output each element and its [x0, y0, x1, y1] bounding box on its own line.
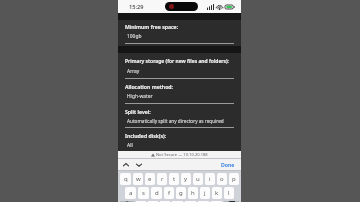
staticText: h — [191, 189, 195, 197]
staticText: o — [220, 175, 224, 183]
button[interactable]: t — [169, 173, 179, 185]
staticText: y — [184, 175, 188, 183]
button[interactable]: Allocation method: — [118, 83, 241, 104]
button[interactable]: Next field — [135, 161, 143, 169]
staticText: w — [136, 175, 141, 183]
staticText: q — [124, 175, 128, 183]
button[interactable]: k — [212, 187, 222, 199]
staticText: d — [155, 189, 159, 197]
staticText: Array — [127, 68, 140, 75]
staticText: r — [161, 175, 164, 183]
staticText: Included disk(s): — [125, 132, 167, 139]
staticText: e — [148, 175, 152, 183]
button[interactable]: Done — [215, 159, 241, 170]
button[interactable]: p — [229, 173, 239, 185]
staticText: p — [232, 175, 236, 183]
button[interactable]: Primary storage (for new files and folde… — [118, 58, 241, 79]
button[interactable]: Included disk(s): — [118, 132, 241, 151]
staticText: Allocation method: — [125, 83, 174, 90]
button[interactable]: Shift — [120, 201, 134, 202]
button[interactable]: w — [133, 173, 143, 185]
staticText: j — [204, 189, 206, 197]
button[interactable]: o — [217, 173, 227, 185]
staticText: l — [228, 189, 230, 197]
button[interactable]: j — [200, 187, 210, 199]
staticText: g — [179, 189, 183, 197]
staticText: Done — [221, 161, 235, 168]
button[interactable]: Split level: — [118, 108, 241, 128]
staticText: Minimum free space: — [125, 23, 179, 30]
button[interactable]: q — [120, 173, 131, 185]
button[interactable]: a — [125, 187, 136, 199]
staticText: t — [173, 175, 176, 183]
staticText: Primary storage (for new files and folde… — [125, 58, 229, 65]
staticText: i — [209, 175, 211, 183]
button[interactable]: u — [193, 173, 203, 185]
staticText: u — [196, 175, 200, 183]
button[interactable]: Previous field — [122, 161, 130, 169]
staticText: Automatically split any directory as req… — [127, 118, 224, 124]
button[interactable]: e — [145, 173, 155, 185]
staticText: High-water — [127, 93, 153, 100]
button[interactable]: g — [176, 187, 186, 199]
button[interactable]: h — [188, 187, 198, 199]
button[interactable]: i — [205, 173, 215, 185]
button[interactable]: d — [151, 187, 162, 199]
staticText: 100gb — [127, 33, 142, 40]
button[interactable]: f — [164, 187, 174, 199]
staticText: f — [168, 189, 171, 197]
staticText: s — [142, 189, 145, 197]
button[interactable]: Delete — [224, 201, 239, 202]
staticText: All — [127, 142, 133, 149]
button[interactable]: r — [157, 173, 167, 185]
button[interactable]: s — [138, 187, 149, 199]
staticText: Not Secure — 10.10.20.188 — [156, 152, 208, 158]
button[interactable]: y — [181, 173, 191, 185]
staticText: Split level: — [125, 108, 151, 115]
staticText: 15:29 — [129, 3, 144, 11]
staticText: a — [129, 189, 133, 197]
staticText: k — [215, 189, 219, 197]
button[interactable]: Minimum free space: — [118, 23, 241, 44]
button[interactable]: l — [224, 187, 234, 199]
